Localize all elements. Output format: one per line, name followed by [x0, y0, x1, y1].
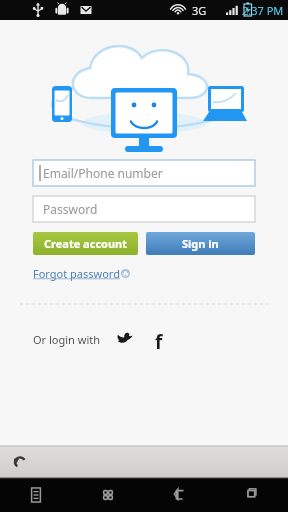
button[interactable]: Create account	[33, 232, 138, 255]
staticText: Email/Phone number	[43, 165, 163, 181]
button[interactable]: Recent apps	[216, 478, 288, 512]
staticText: Forgot password	[33, 266, 120, 281]
staticText: Sign in	[182, 236, 219, 251]
button[interactable]: Back	[144, 478, 216, 512]
button[interactable]: Menu	[0, 478, 72, 512]
staticText: Or login with	[33, 332, 101, 347]
button[interactable]: Sign in	[146, 232, 255, 255]
button[interactable]: Back	[6, 448, 34, 476]
button[interactable]: Login with Facebook	[149, 329, 169, 349]
staticText: f	[155, 329, 163, 349]
button[interactable]: Email/Phone number	[33, 160, 255, 186]
staticText: 2:37 PM	[242, 3, 284, 18]
staticText: 3G	[192, 3, 207, 18]
button[interactable]: Home	[72, 478, 144, 512]
button[interactable]: Forgot password	[33, 266, 130, 281]
button[interactable]: Password	[33, 196, 255, 222]
staticText: Create account	[44, 236, 128, 251]
button[interactable]: Login with Twitter	[115, 329, 135, 349]
staticText: Password	[43, 201, 98, 217]
